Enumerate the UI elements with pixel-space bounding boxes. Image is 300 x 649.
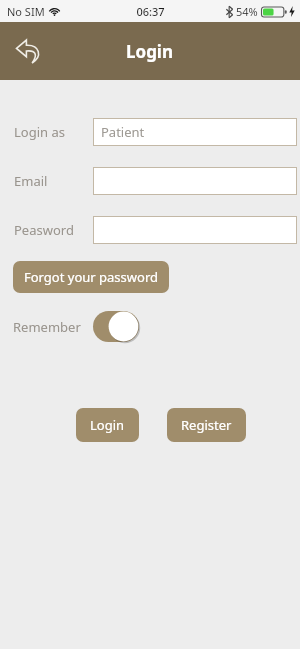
staticText: Register — [181, 416, 232, 434]
button[interactable]: Back — [8, 30, 50, 72]
staticText: Login as — [14, 123, 65, 141]
staticText: Peasword — [14, 221, 74, 239]
button[interactable]: Forgot your password — [13, 261, 169, 293]
button[interactable]: Login — [76, 408, 139, 442]
staticText: Login — [90, 416, 125, 434]
button[interactable]: Remember me toggle, on — [93, 311, 139, 342]
staticText: Login — [126, 40, 174, 63]
button[interactable]: Patient — [93, 118, 297, 146]
button[interactable] — [93, 216, 297, 244]
staticText: 54% — [236, 4, 258, 19]
button[interactable]: Register — [167, 408, 246, 442]
staticText: No SIM — [7, 4, 45, 19]
staticText: Email — [14, 172, 48, 190]
staticText: Remember — [13, 318, 81, 336]
staticText: Patient — [101, 123, 145, 141]
staticText: Forgot your password — [24, 268, 158, 286]
button[interactable] — [93, 167, 297, 195]
staticText: 06:37 — [136, 4, 165, 19]
